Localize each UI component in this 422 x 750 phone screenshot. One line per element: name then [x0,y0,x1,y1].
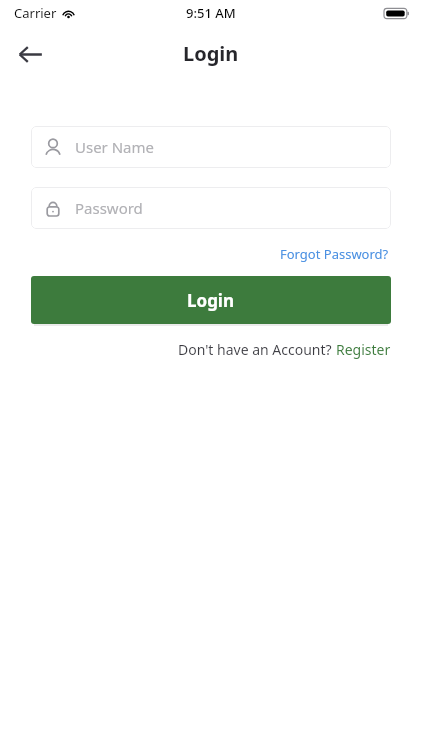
staticText: Password [75,198,143,218]
staticText: Don't have an Account? [178,340,336,359]
button[interactable]: User Name [31,126,391,168]
staticText: Forgot Password? [280,245,389,263]
button[interactable]: Back [8,32,52,76]
button[interactable]: Register [336,340,391,359]
button[interactable]: Login [31,276,391,324]
staticText: Login [183,40,239,67]
staticText: Register [336,340,391,359]
staticText: Carrier [14,4,57,22]
staticText: User Name [75,137,155,157]
staticText: 9:51 AM [186,4,236,22]
button[interactable]: Password [31,187,391,229]
button[interactable]: Forgot Password? [278,243,391,265]
staticText: Login [187,289,235,312]
